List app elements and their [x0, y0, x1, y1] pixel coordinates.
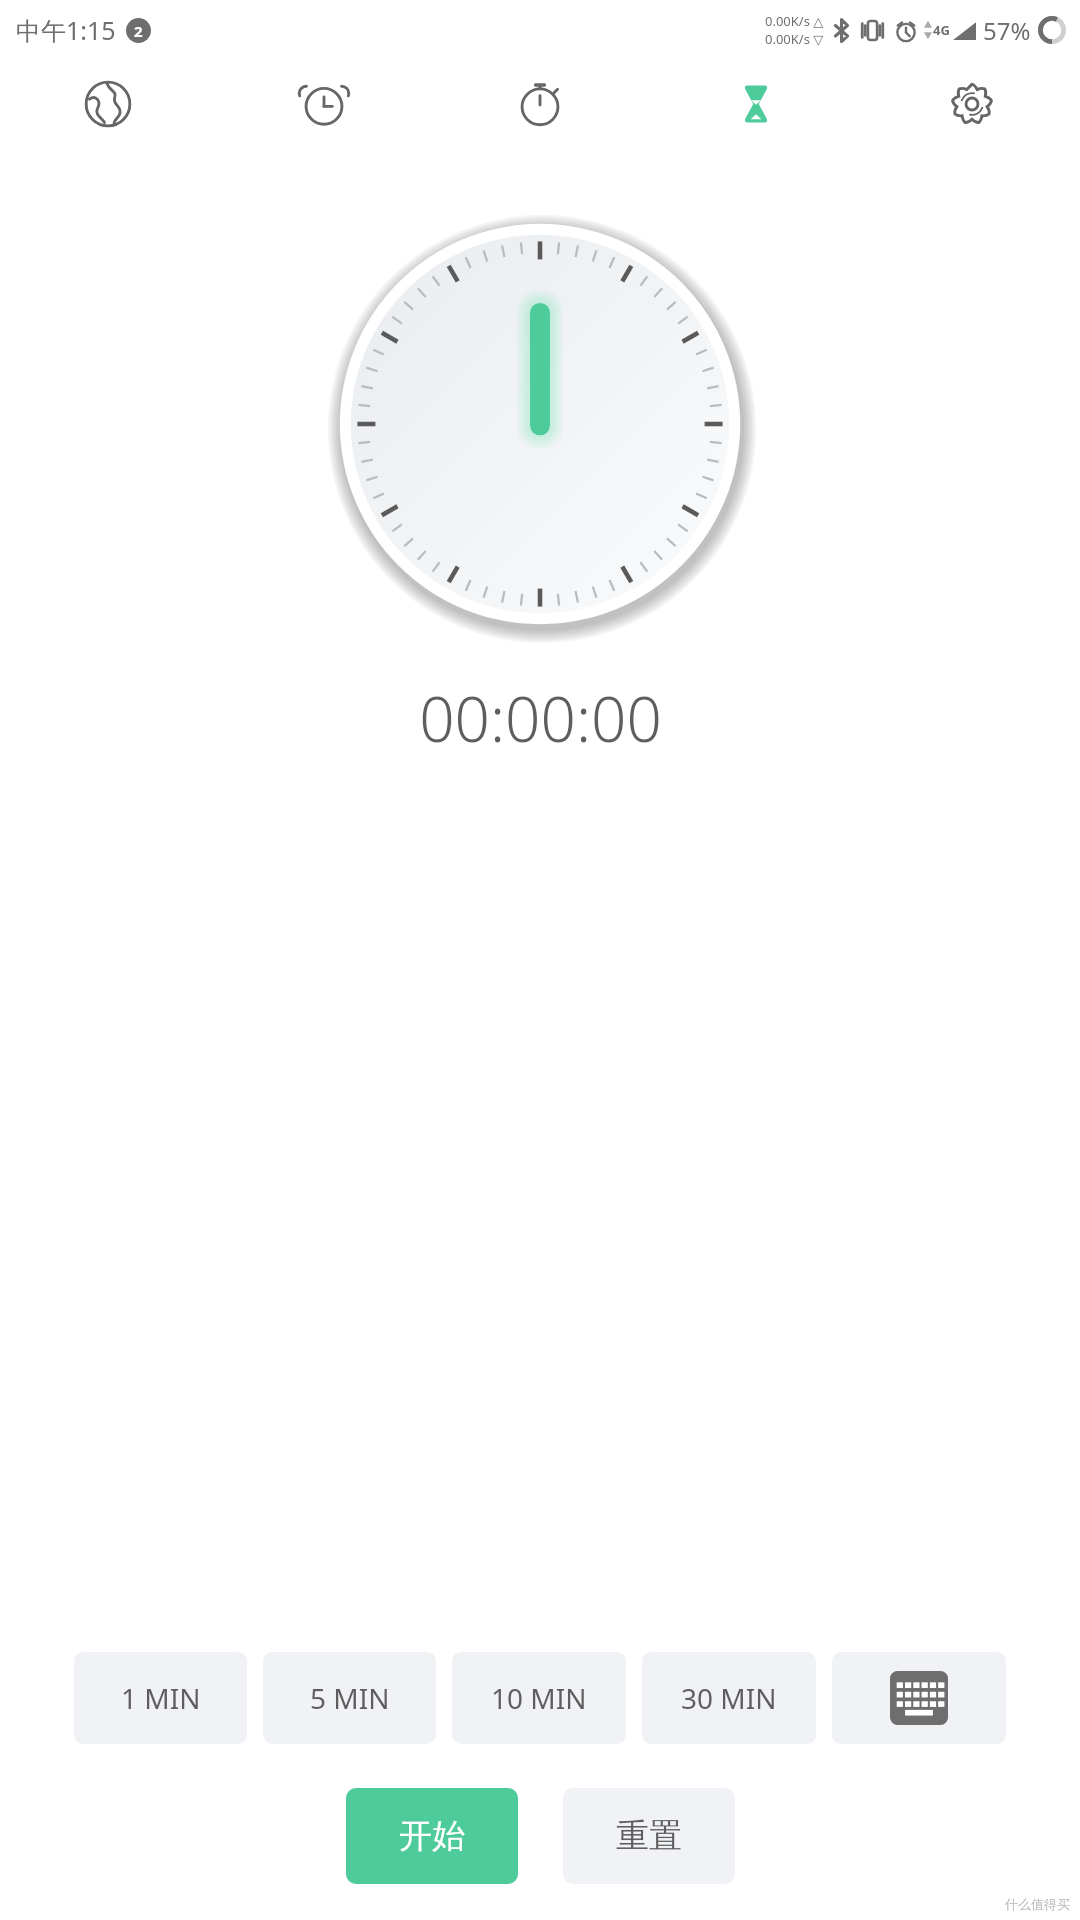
- button[interactable]: 重置: [563, 1788, 735, 1884]
- staticText: 57%: [983, 14, 1031, 47]
- staticText: 0.00K/s ▽: [765, 30, 824, 48]
- staticText: 重置: [616, 1815, 682, 1857]
- button[interactable]: Keyboard input: [832, 1652, 1006, 1744]
- button[interactable]: Alarm: [216, 60, 432, 148]
- staticText: 什么值得买: [1005, 1896, 1070, 1912]
- staticText: 中午1:15: [16, 13, 116, 47]
- staticText: 4G: [933, 21, 950, 39]
- button[interactable]: 开始: [346, 1788, 518, 1884]
- button[interactable]: 30 MIN: [642, 1652, 816, 1744]
- button[interactable]: Settings: [864, 60, 1080, 148]
- staticText: 30 MIN: [681, 1679, 777, 1717]
- staticText: 10 MIN: [491, 1679, 587, 1717]
- staticText: 5 MIN: [310, 1679, 390, 1717]
- staticText: 0.00K/s △: [765, 12, 824, 30]
- button[interactable]: 1 MIN: [74, 1652, 247, 1744]
- button[interactable]: Timer dial: [320, 204, 760, 644]
- button[interactable]: 10 MIN: [452, 1652, 626, 1744]
- button[interactable]: Timer: [648, 60, 864, 148]
- staticText: 2: [134, 21, 143, 41]
- staticText: 开始: [399, 1815, 465, 1857]
- staticText: 00:00:00: [419, 676, 662, 760]
- button[interactable]: Stopwatch: [432, 60, 648, 148]
- button[interactable]: 5 MIN: [263, 1652, 436, 1744]
- button[interactable]: World clock: [0, 60, 216, 148]
- staticText: 1 MIN: [121, 1679, 201, 1717]
